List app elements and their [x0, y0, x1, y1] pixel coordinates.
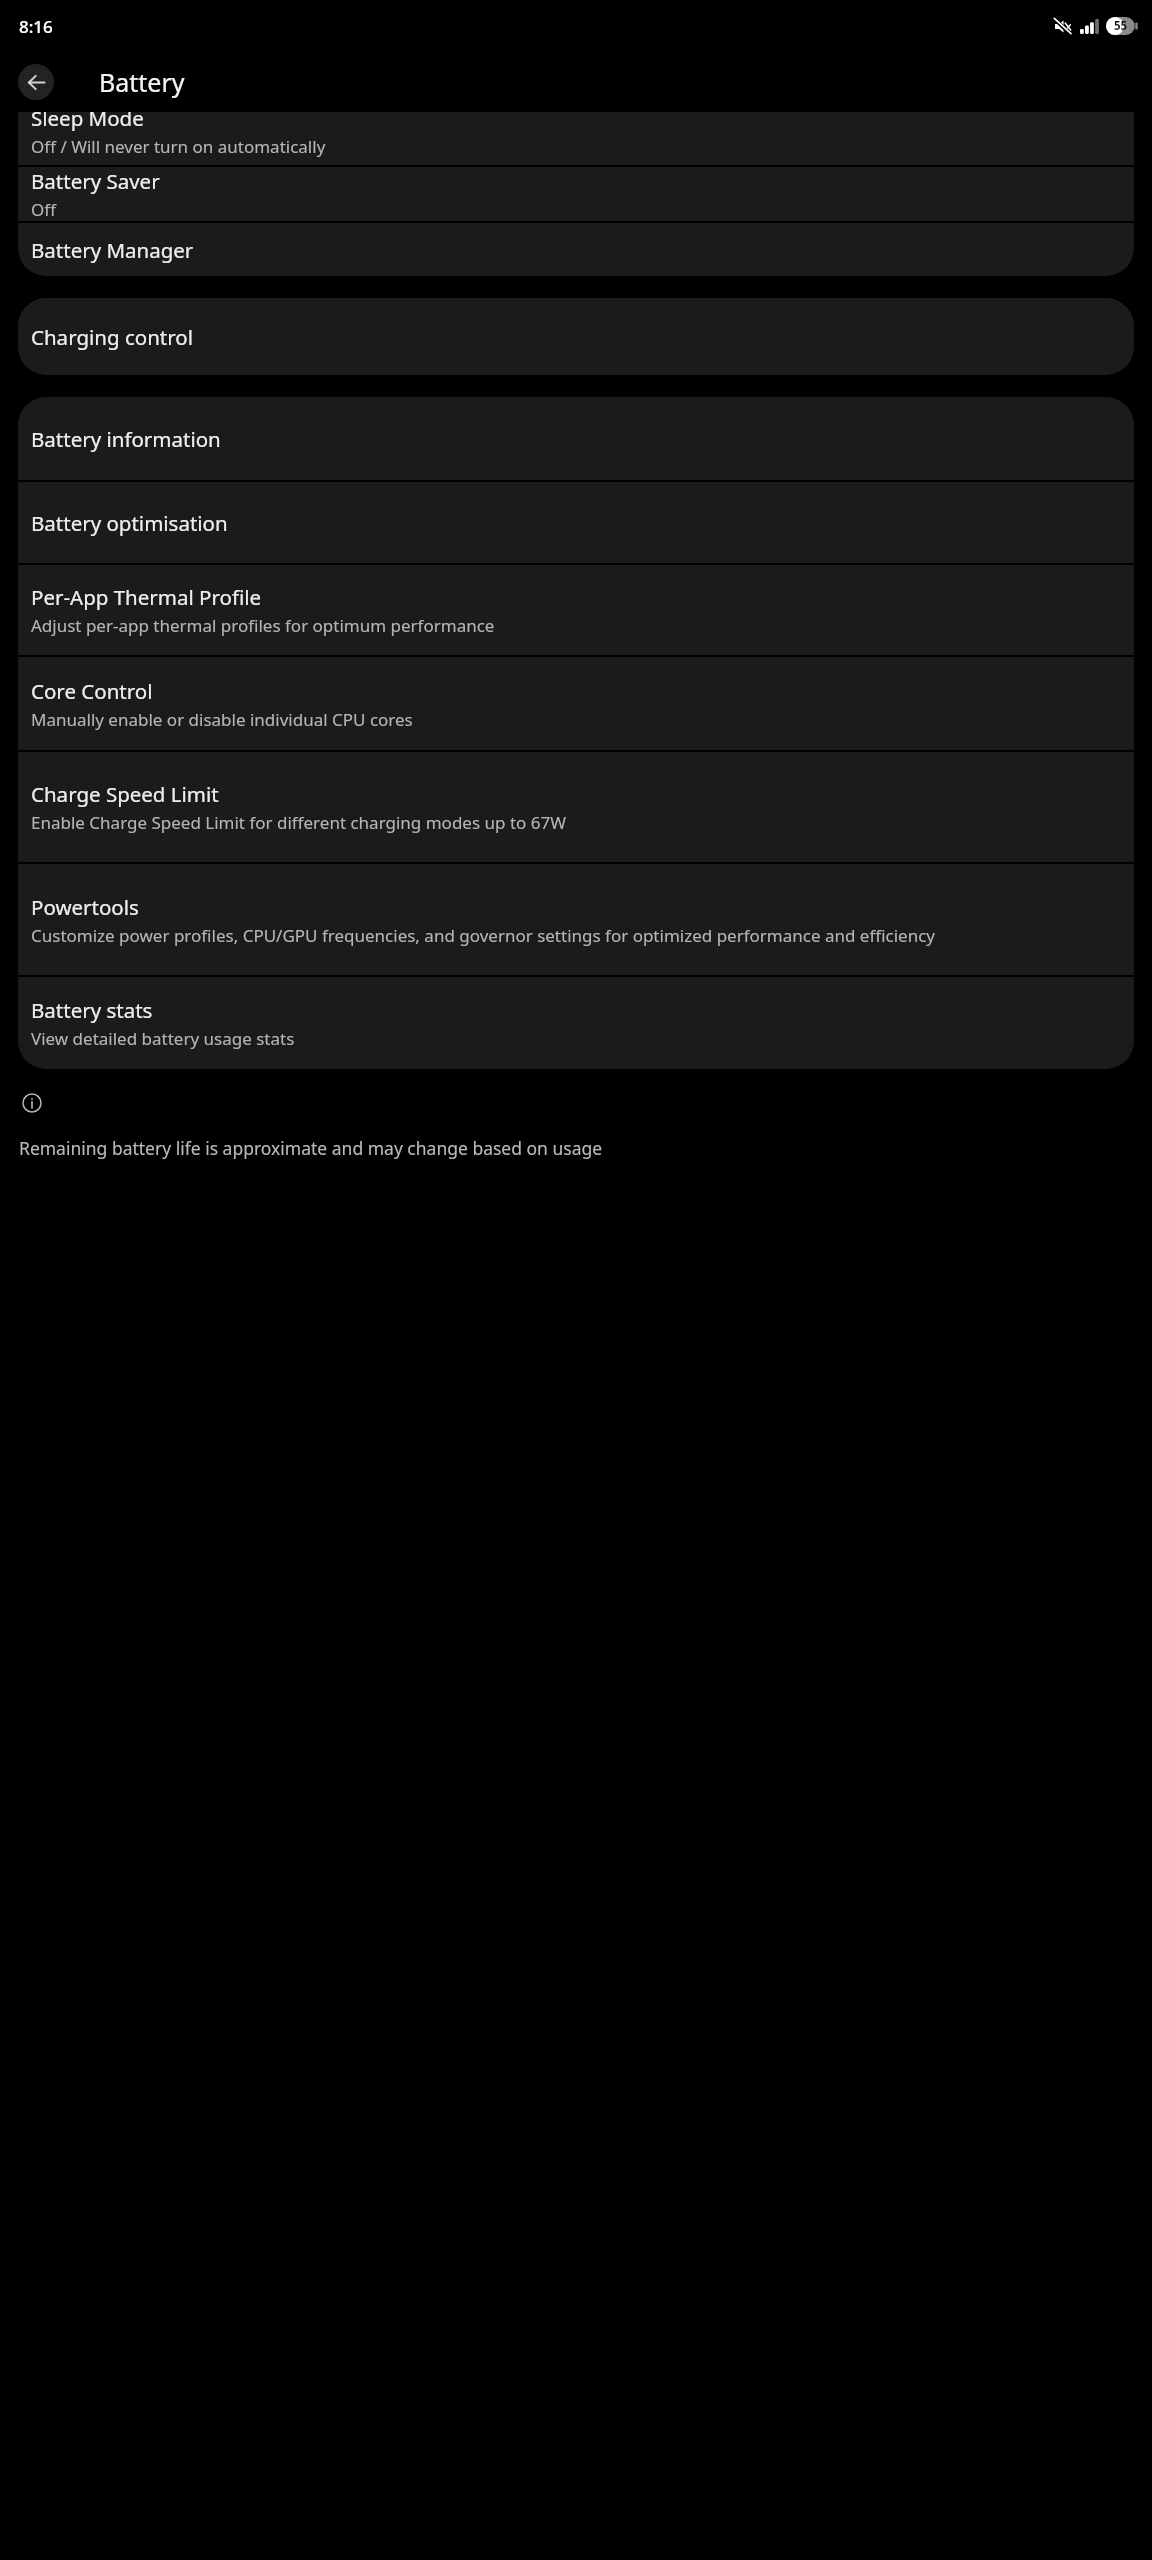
staticText: Off / Will never turn on automatically — [31, 135, 326, 157]
staticText: Battery stats — [31, 996, 153, 1024]
button[interactable]: Battery optimisation — [18, 482, 1134, 563]
staticText: View detailed battery usage stats — [31, 1027, 295, 1050]
staticText: Battery Manager — [31, 236, 194, 264]
staticText: Battery Saver — [31, 167, 160, 195]
button[interactable]: Battery Saver — [18, 167, 1134, 221]
button[interactable]: Sleep Mode — [18, 112, 1134, 165]
staticText: Manually enable or disable individual CP… — [31, 708, 413, 731]
staticText: Battery information — [31, 425, 221, 453]
staticText: Core Control — [31, 677, 153, 705]
button[interactable]: Charging control — [18, 298, 1134, 375]
button[interactable]: Core Control — [18, 657, 1134, 750]
staticText: Sleep Mode — [31, 112, 144, 132]
staticText: Charging control — [31, 323, 193, 351]
button[interactable]: Back — [18, 64, 54, 100]
staticText: Battery optimisation — [31, 509, 228, 537]
button[interactable]: Battery stats — [18, 977, 1134, 1069]
staticText: Off — [31, 198, 56, 221]
staticText: Enable Charge Speed Limit for different … — [31, 811, 566, 834]
staticText: Powertools — [31, 893, 139, 921]
button[interactable]: Charge Speed Limit — [18, 752, 1134, 862]
staticText: Adjust per-app thermal profiles for opti… — [31, 614, 495, 637]
staticText: 8:16 — [19, 15, 53, 38]
staticText: 55 — [1114, 18, 1128, 34]
staticText: Charge Speed Limit — [31, 780, 219, 808]
button[interactable]: Battery information — [18, 397, 1134, 480]
staticText: Battery — [99, 65, 185, 99]
button[interactable]: Battery Manager — [18, 223, 1134, 276]
staticText: Per-App Thermal Profile — [31, 583, 262, 611]
button[interactable]: Per-App Thermal Profile — [18, 565, 1134, 655]
button[interactable]: Powertools — [18, 864, 1134, 975]
staticText: Customize power profiles, CPU/GPU freque… — [31, 924, 936, 947]
staticText: Remaining battery life is approximate an… — [19, 1136, 1112, 1160]
